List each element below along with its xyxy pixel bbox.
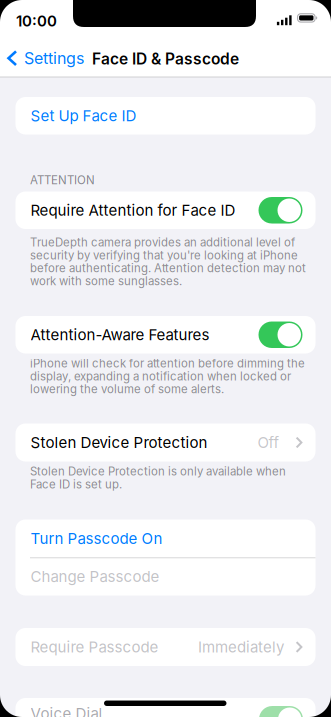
button[interactable]: Attention-Aware Features	[258, 321, 302, 348]
staticText: Settings	[24, 48, 84, 68]
staticText: Require Attention for Face ID	[30, 201, 235, 219]
staticText: Face ID & Passcode	[92, 49, 239, 68]
button[interactable]: Require Passcode	[15, 628, 315, 666]
staticText: Turn Passcode On	[30, 529, 162, 548]
button[interactable]: Voice Dial	[259, 706, 303, 717]
staticText: Change Passcode	[30, 567, 159, 586]
button[interactable]: Set Up Face ID	[15, 97, 315, 134]
button[interactable]: Turn Passcode On	[15, 519, 315, 557]
button[interactable]: Back to Settings	[7, 48, 84, 68]
staticText: ATTENTION	[30, 173, 95, 187]
button[interactable]: Require Attention for Face ID	[258, 197, 302, 223]
staticText: TrueDepth camera provides an additional …	[30, 235, 306, 288]
staticText: Require Passcode	[30, 638, 158, 656]
button[interactable]: Stolen Device Protection	[15, 423, 315, 461]
staticText: Immediately	[198, 638, 284, 656]
staticText: Attention-Aware Features	[30, 326, 209, 344]
staticText: Set Up Face ID	[30, 107, 136, 125]
button[interactable]: Change Passcode	[15, 557, 315, 595]
staticText: 10:00	[16, 12, 57, 30]
staticText: Stolen Device Protection is only availab…	[30, 464, 286, 491]
staticText: iPhone will check for attention before d…	[30, 356, 305, 396]
staticText: Voice Dial	[30, 704, 102, 717]
staticText: Stolen Device Protection	[30, 433, 207, 452]
staticText: Off	[257, 433, 279, 451]
